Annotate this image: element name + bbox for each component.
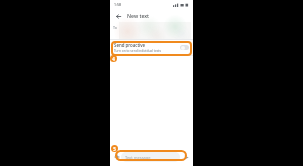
staticText: 5 — [113, 146, 116, 152]
staticText: 1:58 — [114, 2, 121, 7]
button[interactable]: Send proactive toggle — [180, 45, 189, 50]
staticText: New text — [127, 12, 150, 19]
button[interactable]: Attach — [113, 153, 121, 161]
button[interactable]: Send proactive — [110, 40, 193, 55]
staticText: Turn on to send individual texts — [114, 49, 162, 53]
staticText: Send proactive — [114, 42, 146, 48]
staticText: To — [113, 25, 117, 30]
staticText: 4 — [112, 56, 115, 62]
staticText: Text message — [125, 155, 151, 160]
button[interactable]: Back — [113, 11, 123, 21]
button[interactable]: Send — [182, 153, 190, 161]
button[interactable]: Text message — [121, 152, 180, 162]
